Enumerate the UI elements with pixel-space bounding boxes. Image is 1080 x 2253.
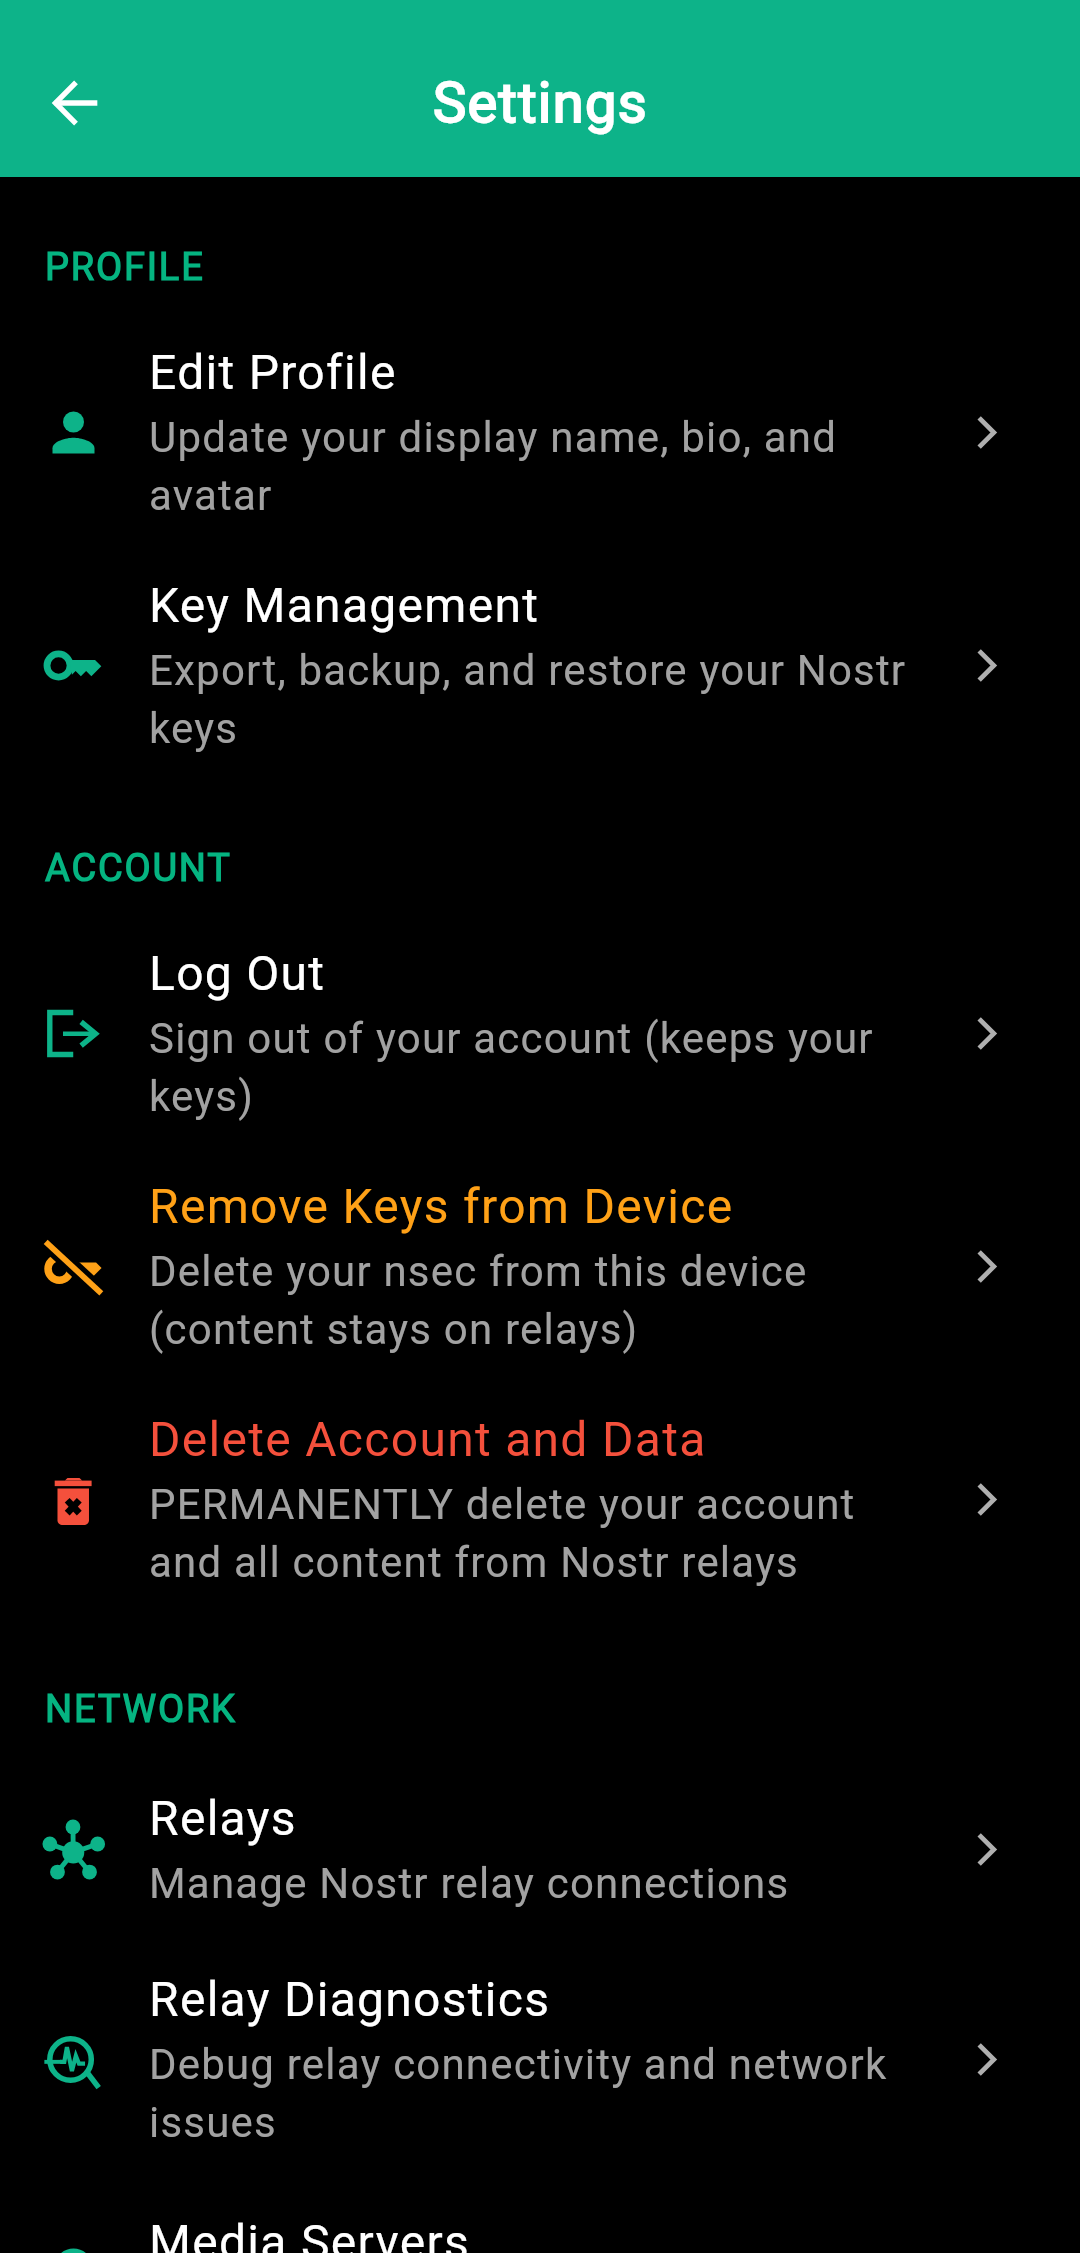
staticText: Delete your nsec from this device (conte… [149, 1247, 925, 1354]
staticText: ACCOUNT [45, 846, 232, 891]
button[interactable]: Edit Profile [0, 316, 1080, 549]
staticText: Edit Profile [149, 344, 397, 400]
button[interactable]: Back [11, 38, 140, 167]
staticText: Media Servers [149, 2214, 471, 2253]
button[interactable]: Key Management [0, 549, 1080, 782]
staticText: Sign out of your account (keeps your key… [149, 1014, 925, 1121]
staticText: PERMANENTLY delete your account and all … [149, 1480, 925, 1587]
button[interactable]: Relays [0, 1762, 1080, 1943]
staticText: PROFILE [45, 245, 205, 290]
staticText: Debug relay connectivity and network iss… [149, 2040, 925, 2147]
staticText: Relays [149, 1790, 297, 1846]
staticText: Relay Diagnostics [149, 1971, 551, 2027]
staticText: Manage Nostr relay connections [149, 1859, 790, 1908]
button[interactable]: Delete Account and Data [0, 1383, 1080, 1616]
button[interactable]: Relay Diagnostics [0, 1943, 1080, 2186]
staticText: NETWORK [45, 1687, 237, 1732]
staticText: Delete Account and Data [149, 1411, 707, 1467]
staticText: Log Out [149, 945, 326, 1001]
staticText: Remove Keys from Device [149, 1178, 734, 1234]
staticText: Update your display name, bio, and avata… [149, 413, 925, 520]
button[interactable]: Log Out [0, 917, 1080, 1150]
staticText: Export, backup, and restore your Nostr k… [149, 646, 925, 753]
button[interactable]: Remove Keys from Device [0, 1150, 1080, 1383]
staticText: Settings [433, 70, 648, 136]
button[interactable]: Media Servers [0, 2186, 1080, 2253]
staticText: Key Management [149, 577, 540, 633]
